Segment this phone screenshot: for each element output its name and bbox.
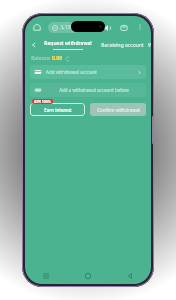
staticText: Receiving account xyxy=(101,42,144,49)
button[interactable]: Request withdrawal xyxy=(42,40,94,50)
staticText: 3,150. xyxy=(60,24,75,31)
button[interactable]: Refresh balance xyxy=(64,55,71,62)
button[interactable]: Add withdrawal account xyxy=(30,65,146,79)
staticText: Confirm withdrawal xyxy=(97,107,140,113)
button[interactable]: 3,150. xyxy=(48,22,79,33)
button[interactable]: Messages xyxy=(117,21,130,34)
button[interactable]: Earn interest xyxy=(30,103,85,116)
staticText: 0.00 xyxy=(52,55,62,62)
button[interactable]: Confirm withdrawal xyxy=(90,103,146,116)
staticText: Balance xyxy=(31,55,50,62)
button[interactable]: Notifications xyxy=(100,21,113,34)
staticText: Request withdrawal xyxy=(44,40,92,47)
button[interactable]: Add a withdrawal account before withdraw… xyxy=(30,83,146,97)
button[interactable]: Back xyxy=(29,40,39,50)
button[interactable]: Receiving account xyxy=(99,42,146,49)
button[interactable]: Home xyxy=(30,20,44,34)
staticText: APR 100% xyxy=(34,99,51,104)
button[interactable]: Recents xyxy=(41,271,51,281)
staticText: Add withdrawal account xyxy=(46,69,97,75)
staticText: Add a withdrawal account before withdraw… xyxy=(46,87,142,93)
button[interactable]: Home xyxy=(83,271,93,281)
button[interactable]: More options xyxy=(134,21,146,33)
button[interactable]: Back xyxy=(125,271,135,281)
staticText: Earn interest xyxy=(44,107,72,113)
